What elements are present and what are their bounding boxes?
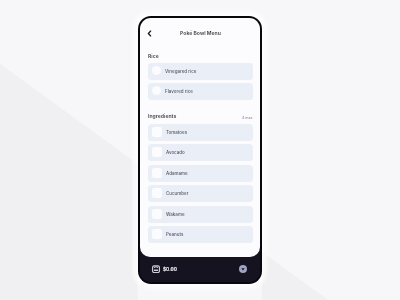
staticText: $0.00 [163, 266, 177, 272]
staticText: Wakame [166, 212, 185, 217]
staticText: Adamame [166, 171, 188, 176]
staticText: Peanuts [166, 232, 184, 237]
button[interactable]: Expand cart [239, 265, 247, 273]
button[interactable]: Tomatoes [148, 124, 253, 141]
staticText: Flavored rice [165, 89, 193, 94]
button[interactable]: Avocado [148, 144, 253, 161]
staticText: Vinegared rice [165, 69, 197, 74]
button[interactable]: Cart [152, 265, 177, 273]
staticText: Ingredients [148, 113, 177, 119]
staticText: 4 max [242, 116, 253, 120]
button[interactable]: Vinegared rice [148, 63, 253, 80]
staticText: Avocado [166, 150, 185, 155]
staticText: Cucumber [166, 191, 189, 196]
button[interactable]: Peanuts [148, 226, 253, 243]
button[interactable]: Wakame [148, 206, 253, 223]
button[interactable]: Back [143, 27, 156, 40]
staticText: Rice [148, 53, 159, 59]
button[interactable]: Flavored rice [148, 83, 253, 100]
button[interactable]: Adamame [148, 165, 253, 182]
button[interactable]: Cucumber [148, 185, 253, 202]
staticText: Tomatoes [166, 130, 188, 135]
staticText: Poké Bowl Menu [180, 30, 221, 36]
other: Cart [152, 265, 160, 273]
